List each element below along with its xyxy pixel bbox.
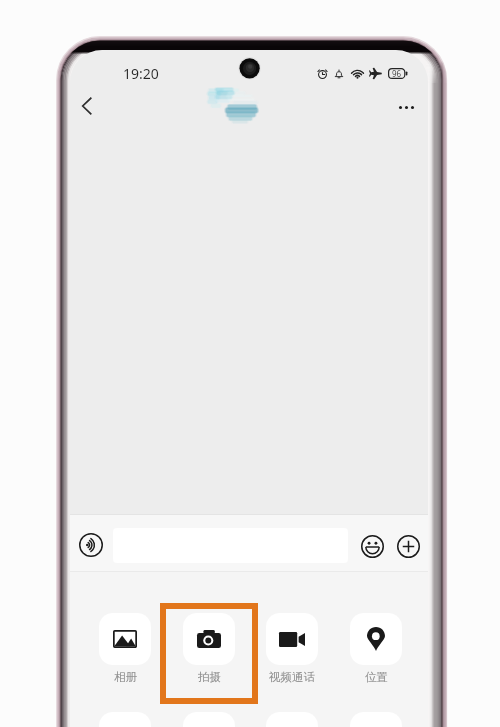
- button[interactable]: 收藏: [335, 712, 417, 727]
- staticText: 相册: [114, 670, 137, 684]
- button[interactable]: More options: [386, 87, 426, 127]
- button[interactable]: 视频通话: [251, 613, 333, 685]
- button[interactable]: 拍摄: [168, 613, 250, 685]
- button[interactable]: 转账: [168, 712, 250, 727]
- button[interactable]: Back: [70, 86, 106, 126]
- staticText: 拍摄: [198, 670, 221, 684]
- staticText: 视频通话: [269, 670, 315, 684]
- button[interactable]: More: [393, 531, 423, 561]
- button[interactable]: Emoji: [357, 531, 387, 561]
- staticText: 位置: [365, 670, 388, 684]
- button[interactable]: 红包: [84, 712, 166, 727]
- staticText: 96: [392, 68, 402, 79]
- button[interactable]: 语音输入: [251, 712, 333, 727]
- button[interactable]: 相册: [84, 613, 166, 685]
- button[interactable]: 位置: [335, 613, 417, 685]
- staticText: 19:20: [123, 64, 159, 83]
- button[interactable]: Voice input: [75, 529, 106, 560]
